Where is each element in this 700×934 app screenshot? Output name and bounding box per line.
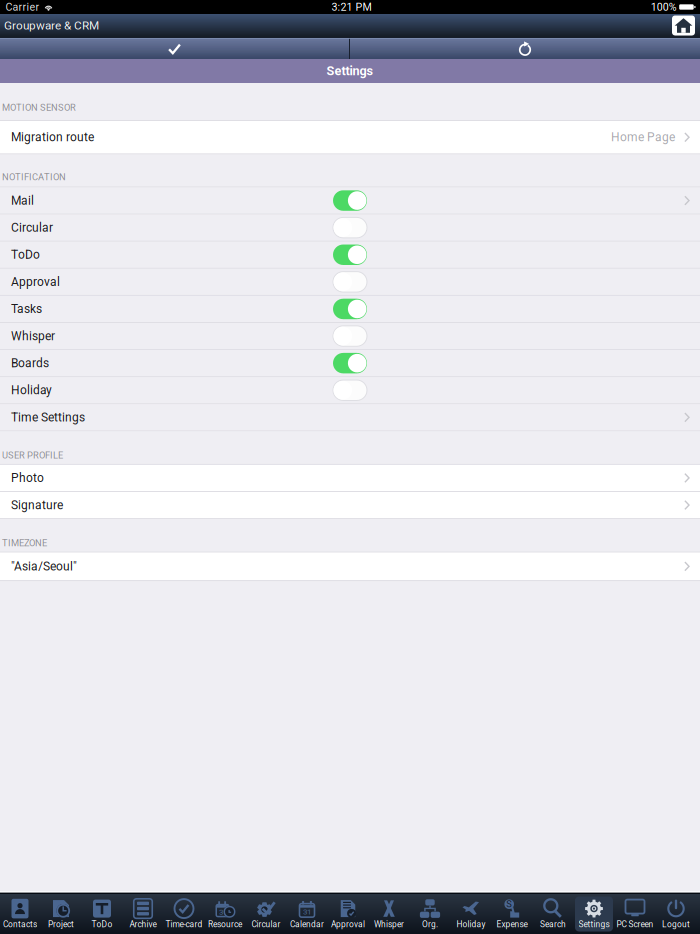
button[interactable]: Photo [0,465,700,491]
staticText: Project [48,920,74,929]
button[interactable]: Search [532,893,573,934]
staticText: Holiday [456,920,485,929]
staticText: Holiday [11,383,52,397]
staticText: Time-card [165,920,202,929]
button[interactable]: S [491,893,532,934]
button[interactable]: "Asia/Seoul" [0,553,700,580]
button[interactable]: Tasks [0,296,700,322]
staticText: 31 [303,907,311,916]
button[interactable]: 31 [286,893,327,934]
button[interactable]: 3 [204,893,245,934]
staticText: "Asia/Seoul" [11,559,77,573]
staticText: Tasks [11,302,42,316]
button[interactable]: PC Screen [614,893,655,934]
staticText: Home Page [611,130,675,144]
button[interactable]: Refresh [350,39,700,59]
staticText: Expense [496,920,527,929]
button[interactable]: Signature [0,492,700,518]
button[interactable]: Migration route [0,121,700,153]
staticText: MOTION SENSOR [2,102,76,113]
staticText: Carrier [5,1,39,13]
staticText: Resource [208,920,242,929]
button[interactable]: Holiday [0,377,700,403]
staticText: Circular [11,221,53,235]
staticText: Settings [578,920,609,929]
button[interactable]: ToDo [81,893,122,934]
staticText: Contacts [3,920,37,929]
staticText: Whisper [11,329,55,343]
staticText: ToDo [91,920,112,929]
staticText: 100% [651,1,677,13]
staticText: ToDo [11,248,40,262]
staticText: Boards [11,356,49,370]
staticText: Org. [422,920,438,929]
button[interactable]: Org. [409,893,450,934]
staticText: Search [540,920,566,929]
button[interactable]: Logout [655,893,696,934]
staticText: S [506,898,512,909]
button[interactable]: Whisper [368,893,409,934]
button[interactable]: Whisper [0,323,700,349]
staticText: 3:21 PM [332,1,372,13]
staticText: Mail [11,193,34,208]
button[interactable]: Contacts [0,893,40,934]
staticText: Photo [11,471,44,485]
staticText: Whisper [374,920,404,929]
staticText: Signature [11,498,63,512]
button[interactable]: Settings [573,893,614,934]
staticText: Settings [326,64,373,78]
staticText: 3 [219,907,223,917]
button[interactable]: Mail [0,187,700,214]
staticText: USER PROFILE [2,450,63,461]
button[interactable]: Holiday [450,893,491,934]
staticText: Archive [129,920,156,929]
button[interactable]: Project [40,893,81,934]
staticText: Migration route [11,130,94,144]
staticText: NOTIFICATION [2,172,66,182]
staticText: Approval [11,275,60,289]
button[interactable]: Home [672,15,695,35]
button[interactable]: Boards [0,350,700,376]
button[interactable]: Circular [0,215,700,241]
button[interactable]: Time Settings [0,404,700,430]
button[interactable]: Archive [122,893,163,934]
staticText: Logout [662,920,690,929]
button[interactable]: Circular [245,893,286,934]
staticText: TIMEZONE [2,538,47,549]
button[interactable]: Time-card [163,893,204,934]
staticText: Time Settings [11,410,85,424]
staticText: PC Screen [616,920,653,929]
button[interactable]: Approval [0,269,700,295]
button[interactable]: Approval [327,893,368,934]
staticText: Circular [251,920,280,929]
staticText: Groupware & CRM [4,19,99,32]
staticText: Approval [331,920,365,929]
button[interactable]: Confirm [0,39,349,59]
button[interactable]: ToDo [0,242,700,268]
staticText: Calendar [290,920,324,929]
